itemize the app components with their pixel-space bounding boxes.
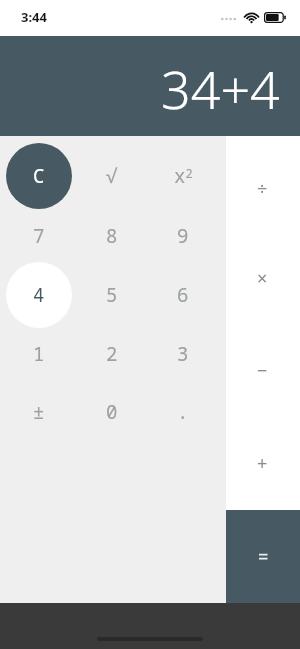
- staticText: 1: [33, 341, 45, 367]
- staticText: 7: [33, 223, 45, 249]
- button[interactable]: Subtract: [229, 337, 295, 403]
- button[interactable]: C: [6, 143, 72, 209]
- button[interactable]: 3: [150, 321, 216, 387]
- button[interactable]: 9: [150, 203, 216, 269]
- staticText: 0: [106, 399, 118, 425]
- button[interactable]: Equals: [226, 510, 300, 603]
- button[interactable]: 2: [79, 321, 145, 387]
- staticText: C: [33, 163, 45, 189]
- staticText: −: [257, 358, 268, 383]
- button[interactable]: Add: [229, 430, 295, 496]
- button[interactable]: √: [79, 143, 145, 209]
- staticText: =: [258, 544, 269, 569]
- staticText: ×: [257, 266, 268, 291]
- staticText: x2: [174, 163, 193, 189]
- button[interactable]: ±: [6, 379, 72, 445]
- button[interactable]: 0: [79, 379, 145, 445]
- button[interactable]: 7: [6, 203, 72, 269]
- staticText: 34+4: [161, 53, 280, 124]
- staticText: 8: [106, 223, 118, 249]
- button[interactable]: Divide: [229, 155, 295, 221]
- button[interactable]: 5: [79, 262, 145, 328]
- staticText: +: [257, 451, 268, 476]
- button[interactable]: 8: [79, 203, 145, 269]
- staticText: √: [106, 163, 118, 189]
- button[interactable]: x2: [150, 143, 216, 209]
- staticText: 2: [106, 341, 118, 367]
- staticText: 4: [33, 282, 45, 308]
- staticText: 3: [177, 341, 189, 367]
- staticText: 5: [106, 282, 118, 308]
- staticText: ±: [33, 399, 45, 425]
- staticText: ÷: [257, 176, 268, 201]
- button[interactable]: 4: [6, 262, 72, 328]
- staticText: 9: [177, 223, 189, 249]
- button[interactable]: Multiply: [229, 245, 295, 311]
- button[interactable]: 1: [6, 321, 72, 387]
- staticText: 3:44: [21, 8, 47, 26]
- button[interactable]: 6: [150, 262, 216, 328]
- staticText: 6: [177, 282, 189, 308]
- staticText: .: [177, 399, 189, 425]
